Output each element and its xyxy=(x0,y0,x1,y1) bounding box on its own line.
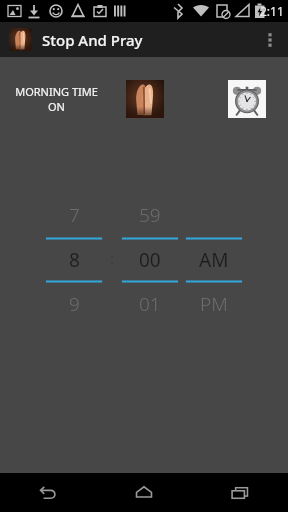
button[interactable]: Pray xyxy=(126,80,164,118)
button[interactable]: More options xyxy=(252,22,288,57)
button[interactable]: Back xyxy=(0,473,96,512)
staticText: MORNING TIME xyxy=(15,84,98,99)
button[interactable]: MORNING TIME xyxy=(0,84,112,114)
button[interactable]: Alarm xyxy=(228,80,266,118)
staticText: AM xyxy=(199,247,229,273)
staticText: 00 xyxy=(139,247,161,273)
button[interactable]: 7 xyxy=(42,192,106,324)
button[interactable]: App icon xyxy=(9,28,32,51)
button[interactable]: AM xyxy=(182,192,246,324)
staticText: 2:11 xyxy=(260,3,284,19)
staticText: Stop And Pray xyxy=(42,30,143,50)
staticText: 8 xyxy=(69,247,80,273)
staticText: PM xyxy=(200,291,228,317)
staticText: 9 xyxy=(69,291,80,317)
staticText: 7 xyxy=(69,202,80,228)
button[interactable]: Recent apps xyxy=(192,473,288,512)
staticText: 01 xyxy=(139,291,161,317)
staticText: 59 xyxy=(139,202,161,228)
button[interactable]: Home xyxy=(96,473,192,512)
button[interactable]: 59 xyxy=(118,192,182,324)
staticText: ON xyxy=(48,99,65,114)
